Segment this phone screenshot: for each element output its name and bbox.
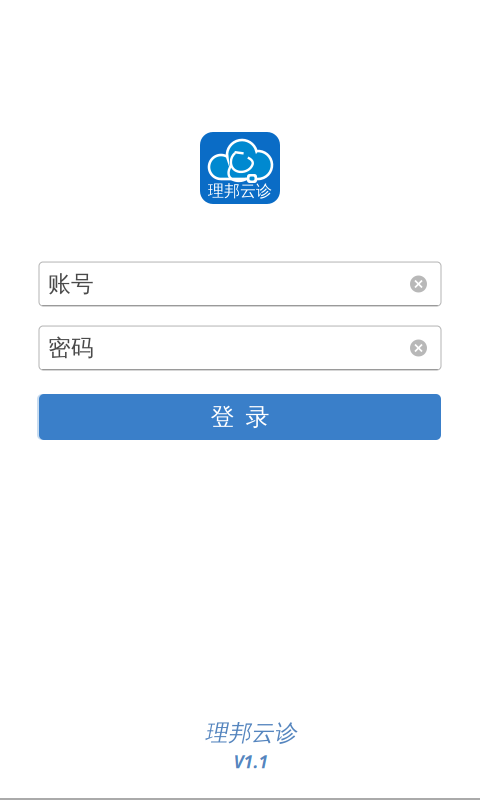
button[interactable]: 登 录 xyxy=(39,394,441,440)
staticText: 理邦云诊 xyxy=(208,181,272,201)
button[interactable]: 账号 xyxy=(39,262,441,306)
staticText: V1.1 xyxy=(233,750,268,773)
button[interactable]: Clear 账号 xyxy=(410,275,427,292)
button[interactable]: 密码 xyxy=(39,326,441,370)
staticText: 登 录 xyxy=(210,402,269,432)
staticText: 账号 xyxy=(48,270,94,298)
button[interactable]: Clear 密码 xyxy=(410,339,427,356)
staticText: 理邦云诊 xyxy=(205,719,297,747)
staticText: 密码 xyxy=(48,334,94,362)
